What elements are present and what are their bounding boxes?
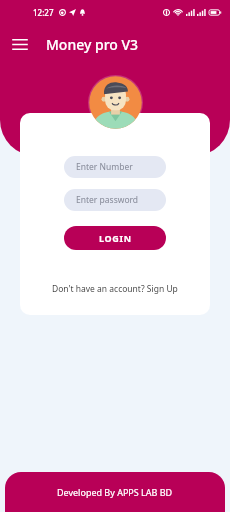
- staticText: LOGIN: [99, 232, 132, 244]
- staticText: Money pro V3: [46, 35, 139, 54]
- other: Profile avatar: [88, 75, 143, 130]
- staticText: 12:27: [33, 7, 54, 18]
- button[interactable]: Developed By APPS LAB BD: [5, 472, 225, 512]
- staticText: Enter Number: [76, 161, 133, 173]
- button[interactable]: Enter Number: [64, 156, 166, 178]
- staticText: Don't have an account? Sign Up: [52, 283, 178, 295]
- button[interactable]: Enter password: [64, 189, 166, 211]
- button[interactable]: Open navigation menu: [7, 31, 33, 57]
- staticText: Enter password: [76, 194, 139, 206]
- button[interactable]: Don't have an account? Sign Up: [20, 280, 210, 298]
- staticText: Developed By APPS LAB BD: [57, 486, 173, 498]
- button[interactable]: LOGIN: [64, 226, 166, 250]
